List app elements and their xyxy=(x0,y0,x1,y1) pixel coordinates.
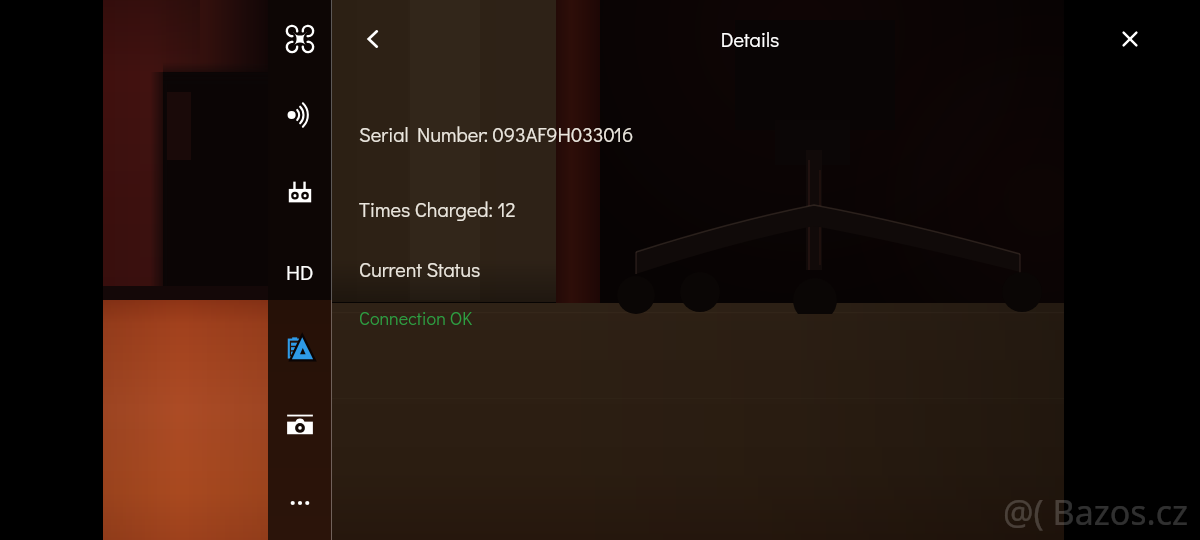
staticText: @( Bazos.cz xyxy=(1003,489,1189,535)
staticText: HD xyxy=(286,258,314,286)
button[interactable]: Signal xyxy=(280,95,320,135)
button[interactable]: Remote controller xyxy=(280,172,320,212)
button[interactable]: Back xyxy=(350,16,396,62)
staticText: Connection OK xyxy=(359,306,473,330)
button[interactable]: Camera settings xyxy=(280,405,320,445)
button[interactable]: Aircraft xyxy=(280,19,320,59)
staticText: Times Charged: 12 xyxy=(359,196,516,222)
button[interactable]: HD xyxy=(280,252,320,292)
staticText: Current Status xyxy=(359,256,481,282)
staticText: Details xyxy=(700,26,800,52)
button[interactable]: Battery xyxy=(280,328,320,368)
staticText: Serial Number: 093AF9H033016 xyxy=(359,121,634,147)
button[interactable]: Close xyxy=(1107,16,1153,62)
button[interactable]: More xyxy=(280,483,320,523)
